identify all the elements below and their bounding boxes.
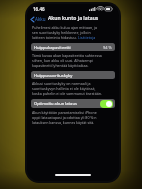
staticText: koska puhelin ei ole sammunut itsestään. — [32, 91, 102, 96]
button[interactable]: Optimoitu akun lataus — [31, 99, 115, 108]
staticText: latauksen kanssa, kunnes käytät sitä. — [32, 120, 95, 125]
staticText: Akun käyttöiän parantamiseksi iPhone — [32, 110, 97, 115]
button[interactable]: Huippukapasiteetti — [31, 43, 115, 51]
button[interactable]: Lisätietoja — [78, 35, 96, 40]
staticText: Huippukapasiteetti — [34, 45, 71, 50]
button[interactable]: Back — [30, 15, 47, 23]
staticText: Lisätietoja — [78, 35, 96, 40]
staticText: oppii lataustapasi ja odottaa yli 80 %:n — [32, 115, 97, 120]
staticText: kapasiteetti lyhentää käyttöaikaa. — [32, 63, 89, 68]
other: Optimoitu akun lataus, on — [100, 100, 113, 108]
staticText: Akkusi suorituskyky on normaali ja — [32, 81, 91, 86]
staticText: sen suorituskyky heikkenee, jolloin — [32, 30, 91, 35]
staticText: Akku — [35, 16, 46, 22]
other: Back — [31, 17, 34, 22]
staticText: 16.46 — [33, 6, 45, 12]
staticText: siihen, kun akku oli uusi. Alhaisempi — [32, 58, 93, 63]
staticText: Huippusuorituskyky — [34, 73, 73, 78]
staticText: Tämä kuvaa akun kapasiteettia suhteessa — [32, 53, 102, 58]
staticText: laitteen toiminta hidastuu. — [32, 35, 77, 40]
staticText: Puhelimesi akku kuluu ajan mittaan, ja — [32, 25, 98, 30]
button[interactable]: Huippusuorituskyky — [31, 71, 115, 79]
staticText: Akun kunto ja lataus — [48, 15, 99, 22]
staticText: 94 % — [103, 45, 112, 50]
staticText: suorituskyvyn hallinta ei ole käytössä, — [32, 86, 96, 91]
staticText: Optimoitu akun lataus — [34, 101, 77, 106]
